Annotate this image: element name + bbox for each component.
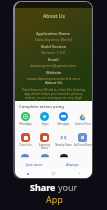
button[interactable]: Drive Info [15,133,35,147]
staticText: AirDroid Share [74,143,92,147]
staticText: your [58,181,78,193]
staticText: Email [48,57,59,62]
button[interactable]: Skype [35,112,54,126]
staticText: Data Express World is a free file sharin… [20,87,87,108]
button[interactable]: Build Version [15,44,92,55]
staticText: Build Version [41,44,67,49]
button[interactable]: Application Name [15,31,92,42]
staticText: Data Express World [35,37,72,42]
staticText: Application Name [36,31,71,36]
staticText: Samsung Notes [35,143,54,149]
staticText: Messages [57,122,70,126]
button[interactable]: Recents [15,169,40,178]
staticText: Skype [41,122,49,126]
staticText: dataexpress@gmail.com [30,63,77,68]
button[interactable]: Save to Drive [73,112,92,126]
staticText: Share [30,181,58,193]
button[interactable]: Website [15,70,92,81]
staticText: www.dataexpressworld.com [27,76,81,81]
button[interactable]: About Us [15,80,92,108]
staticText: Nearby Share [55,143,72,147]
staticText: About Us [43,13,65,20]
staticText: Always [66,162,79,167]
staticText: WhatsApp [19,122,32,126]
button[interactable]: Back [66,169,92,178]
button[interactable]: Email [15,57,92,68]
button[interactable]: Home [40,169,66,178]
staticText: App [46,193,63,205]
staticText: Website [46,70,62,75]
button[interactable]: Always [53,160,92,169]
button[interactable]: Messages [54,112,73,126]
button[interactable]: Samsung Notes [35,133,54,149]
button[interactable]: WhatsApp [15,112,35,126]
button[interactable]: Just once [15,160,53,169]
button[interactable]: Nearby Share [54,133,73,147]
staticText: Save to Drive [75,122,91,126]
staticText: Version 1.0.0 [41,50,66,55]
staticText: Drive Info [19,143,32,147]
staticText: About Us [45,80,63,85]
button[interactable]: AirDroid Share [73,133,92,147]
staticText: Complete action using [19,104,64,110]
staticText: Just once [26,162,43,167]
